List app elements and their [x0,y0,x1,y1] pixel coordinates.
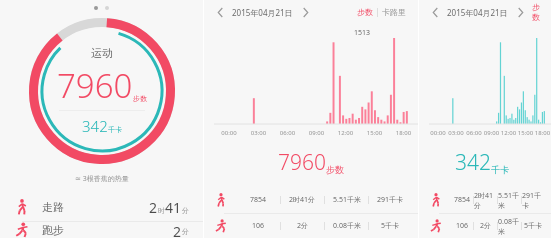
staticText: 15:00 [517,129,534,137]
button[interactable]: 步数 [353,5,377,19]
staticText: 18:00 [389,129,418,137]
staticText: 分 [182,206,189,215]
staticText: 步数 [326,164,344,175]
staticText: 06:00 [465,129,483,137]
staticText: 步数 [357,7,373,17]
staticText: 7854 [250,195,267,205]
staticText: 2分 [480,221,492,231]
staticText: 千卡 [491,164,509,175]
button[interactable]: Previous day [427,4,443,20]
staticText: 0.08千米 [333,221,361,231]
staticText: 00:00 [214,129,244,137]
staticText: 09:00 [302,129,331,137]
staticText: 18:00 [534,129,551,137]
staticText: 342 [455,148,491,177]
staticText: 00:00 [429,129,447,137]
staticText: 时 [158,206,165,215]
staticText: 步数 [133,94,147,103]
staticText: 7960 [278,148,326,177]
button[interactable]: 跑步 [0,222,203,238]
staticText: 5千卡 [524,221,543,231]
staticText: 7854 [454,195,471,205]
staticText: 291千卡 [377,195,404,205]
staticText: 0.08千米 [498,217,521,236]
staticText: 2分 [297,221,309,231]
staticText: 342 [82,116,108,136]
staticText: 步数 [532,2,539,22]
staticText: 千卡 [108,125,122,134]
staticText: ≈ 3根香蕉的热量 [75,174,129,184]
staticText: 运动 [91,46,113,60]
staticText: 2015年04月21日 [447,7,508,18]
staticText: 03:00 [447,129,465,137]
button[interactable]: 7854 [204,187,418,213]
staticText: 2时41分 [289,195,316,205]
staticText: 2 [173,222,182,238]
button[interactable]: Next day [297,4,313,20]
staticText: 03:00 [244,129,273,137]
staticText: 09:00 [483,129,500,137]
button[interactable]: 步数 [528,0,543,24]
button[interactable]: 卡路里 [378,5,410,19]
staticText: 2 [149,198,158,217]
button[interactable]: Previous day [212,4,228,20]
staticText: 291千卡 [522,191,545,210]
button[interactable]: 走路 [0,193,203,221]
staticText: 12:00 [500,129,517,137]
staticText: 卡路里 [382,7,406,17]
staticText: 5千卡 [381,221,400,231]
button[interactable]: Next day [512,4,528,20]
staticText: 1513 [354,28,371,38]
staticText: 5.51千米 [333,195,361,205]
staticText: 走路 [42,200,64,214]
staticText: 15:00 [360,129,389,137]
staticText: 2015年04月21日 [232,7,293,18]
staticText: 41 [165,198,182,217]
staticText: 分 [182,227,189,236]
staticText: 7960 [57,63,133,108]
staticText: 跑步 [42,223,64,237]
staticText: 106 [456,221,469,231]
button[interactable]: 106 [419,214,551,238]
staticText: 06:00 [273,129,302,137]
button[interactable]: 106 [204,214,418,238]
staticText: 5.51千米 [498,191,521,210]
staticText: 2时41分 [474,191,497,210]
staticText: 12:00 [331,129,360,137]
button[interactable]: 7854 [419,187,551,213]
staticText: 106 [252,221,265,231]
